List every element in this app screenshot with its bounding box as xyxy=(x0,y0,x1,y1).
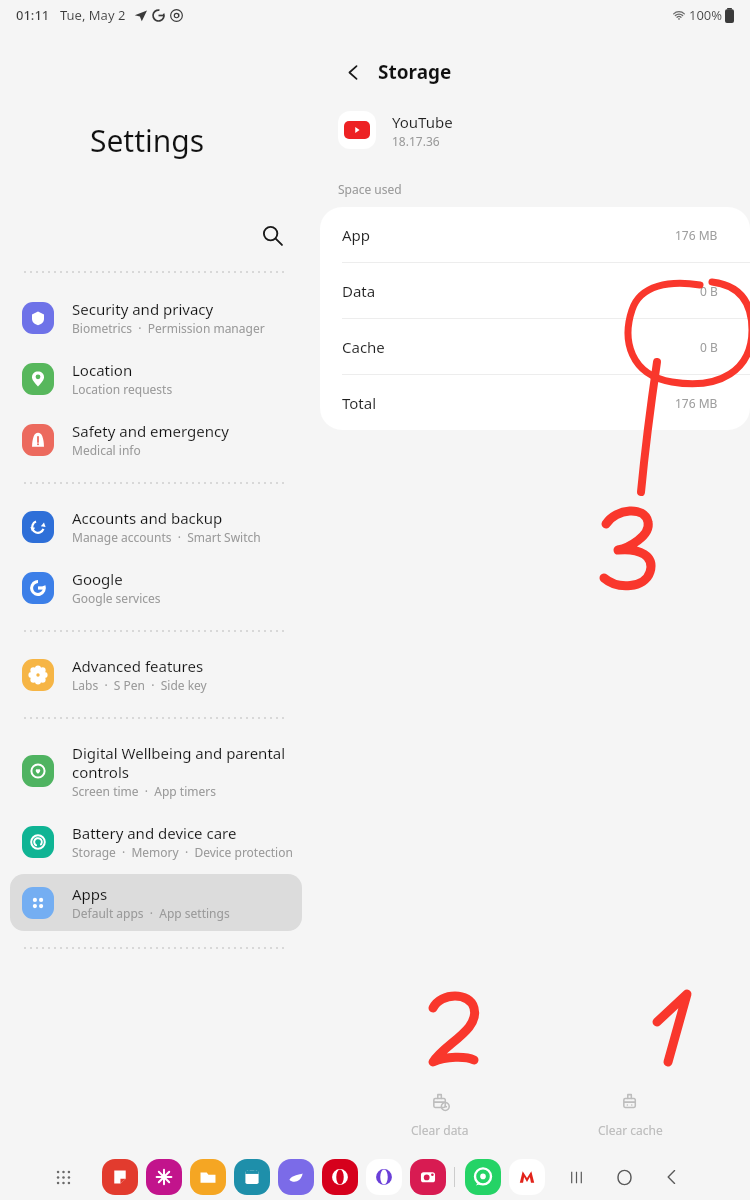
staticText: Settings xyxy=(0,120,294,161)
button[interactable]: Accounts and backup xyxy=(10,498,302,555)
staticText: Location xyxy=(72,360,133,380)
staticText: Screen time · App timers xyxy=(72,783,216,799)
staticText: Apps xyxy=(72,884,108,904)
button[interactable]: cal xyxy=(234,1159,270,1195)
button[interactable]: operagx xyxy=(366,1159,402,1195)
staticText: Accounts and backup xyxy=(72,508,223,528)
button[interactable]: Recents xyxy=(559,1160,593,1194)
staticText: Cache xyxy=(342,337,385,357)
staticText: Google xyxy=(72,569,123,589)
staticText: Medical info xyxy=(72,442,141,458)
staticText: Clear cache xyxy=(598,1122,663,1138)
staticText: Battery and device care xyxy=(72,823,237,843)
button[interactable]: insta xyxy=(410,1159,446,1195)
button[interactable]: WhatsApp xyxy=(465,1159,501,1195)
button[interactable]: Cache xyxy=(320,318,750,374)
staticText: Clear data xyxy=(411,1122,469,1138)
button[interactable]: Google xyxy=(10,559,302,616)
button[interactable]: App xyxy=(320,207,750,262)
staticText: Manage accounts · Smart Switch xyxy=(72,529,261,545)
button[interactable]: Advanced features xyxy=(10,646,302,703)
button[interactable]: Search xyxy=(250,213,294,257)
button[interactable]: Security and privacy xyxy=(10,289,302,346)
staticText: Safety and emergency xyxy=(72,421,229,441)
button[interactable]: Back xyxy=(336,55,370,89)
button[interactable]: Data xyxy=(320,262,750,318)
staticText: 176 MB xyxy=(675,227,718,243)
staticText: Storage xyxy=(378,59,452,85)
button[interactable]: opera xyxy=(322,1159,358,1195)
button[interactable]: note xyxy=(102,1159,138,1195)
staticText: Biometrics · Permission manager xyxy=(72,320,265,336)
staticText: Default apps · App settings xyxy=(72,905,230,921)
staticText: 100% xyxy=(689,6,723,24)
staticText: Tue, May 2 xyxy=(60,6,126,24)
staticText: 176 MB xyxy=(675,395,718,411)
button[interactable]: Back xyxy=(655,1160,689,1194)
button[interactable]: flower xyxy=(146,1159,182,1195)
staticText: 01:11 xyxy=(16,6,50,24)
staticText: Storage · Memory · Device protection xyxy=(72,844,293,860)
button[interactable]: Safety and emergency xyxy=(10,411,302,468)
button[interactable]: Digital Wellbeing and parental controls xyxy=(10,733,302,809)
staticText: Advanced features xyxy=(72,656,204,676)
staticText: Data xyxy=(342,281,376,301)
staticText: Total xyxy=(342,393,377,413)
staticText: App xyxy=(342,225,371,245)
staticText: Space used xyxy=(338,181,402,197)
button[interactable]: Apps xyxy=(10,874,302,931)
button[interactable]: Total xyxy=(320,374,750,430)
button[interactable]: Home xyxy=(607,1160,641,1194)
staticText: 18.17.36 xyxy=(392,133,440,149)
staticText: Google services xyxy=(72,590,161,606)
button[interactable]: internet xyxy=(278,1159,314,1195)
button[interactable]: Metro xyxy=(509,1159,545,1195)
staticText: Labs · S Pen · Side key xyxy=(72,677,207,693)
button[interactable]: Clear cache xyxy=(560,1086,700,1144)
button[interactable]: Battery and device care xyxy=(10,813,302,870)
button[interactable]: Clear data xyxy=(370,1086,510,1144)
button[interactable]: Apps xyxy=(46,1160,80,1194)
staticText: YouTube xyxy=(392,112,453,132)
staticText: 0 B xyxy=(700,283,718,299)
button[interactable]: folder xyxy=(190,1159,226,1195)
staticText: Digital Wellbeing and parental controls xyxy=(72,743,294,782)
button[interactable]: Location xyxy=(10,350,302,407)
staticText: Location requests xyxy=(72,381,173,397)
staticText: 0 B xyxy=(700,339,718,355)
staticText: Security and privacy xyxy=(72,299,214,319)
